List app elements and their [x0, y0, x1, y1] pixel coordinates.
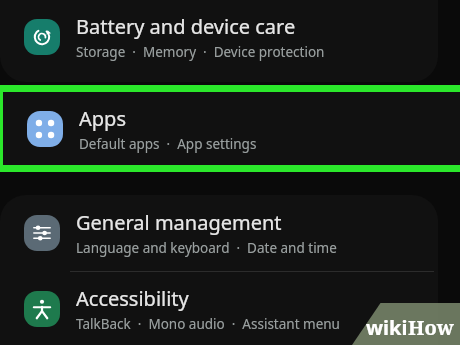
staticText: Apps	[79, 105, 126, 132]
button[interactable]: Apps	[3, 92, 460, 165]
staticText: TalkBack · Mono audio · Assistant menu	[76, 315, 340, 333]
staticText: Default apps · App settings	[79, 135, 257, 153]
staticText: How	[408, 314, 454, 341]
staticText: Battery and device care	[76, 13, 296, 40]
staticText: wiki	[366, 314, 408, 341]
button[interactable]: Accessibility	[0, 272, 438, 345]
staticText: General management	[76, 209, 282, 236]
staticText: Storage · Memory · Device protection	[76, 43, 325, 61]
staticText: Language and keyboard · Date and time	[76, 239, 337, 257]
button[interactable]: Battery and device care	[0, 0, 438, 78]
button[interactable]: Apps	[3, 92, 460, 165]
staticText: Accessibility	[76, 285, 189, 312]
button[interactable]: General management	[0, 195, 438, 271]
